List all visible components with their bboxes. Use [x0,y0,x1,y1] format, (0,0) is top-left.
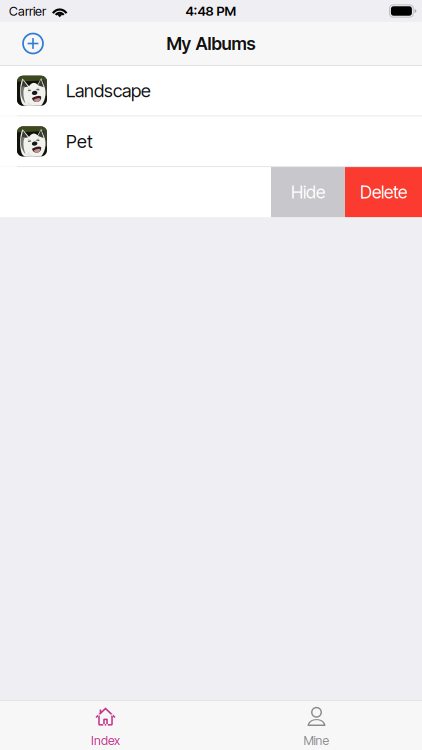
button[interactable]: Pet [0,116,422,166]
button[interactable]: Add album [16,26,50,60]
staticText: Hide [291,181,325,203]
staticText: Landscape [66,80,151,102]
button[interactable]: Hide [271,167,345,217]
staticText: Index [91,733,120,748]
button[interactable]: Mine [211,700,422,750]
staticText: My Albums [166,33,255,54]
button[interactable]: Index [0,700,211,750]
button[interactable]: Delete [345,167,422,217]
staticText: Delete [360,181,407,203]
staticText: Mine [303,733,329,748]
staticText: 4:48 PM [185,3,236,19]
staticText: Pet [66,130,93,152]
button[interactable]: Landscape [0,66,422,116]
staticText: Carrier [9,3,46,19]
